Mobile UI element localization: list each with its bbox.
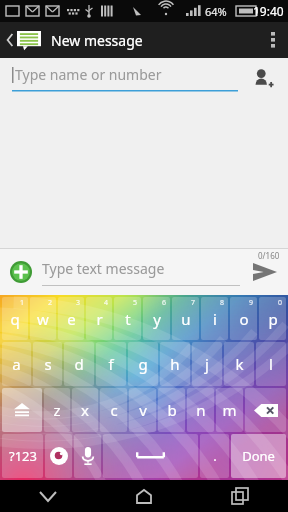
staticText: z: [53, 400, 61, 420]
staticText: n: [196, 400, 206, 420]
staticText: 8: [220, 298, 225, 308]
button[interactable]: j: [192, 342, 222, 386]
button[interactable]: g: [128, 342, 158, 386]
staticText: e: [67, 309, 76, 329]
button[interactable]: i: [201, 297, 228, 340]
button[interactable]: h: [160, 342, 190, 386]
button[interactable]: t: [114, 297, 141, 340]
button[interactable]: Back: [2, 26, 45, 54]
staticText: j: [205, 354, 209, 374]
staticText: 5: [133, 298, 138, 308]
button[interactable]: Done: [231, 434, 286, 478]
button[interactable]: ?123: [2, 434, 43, 478]
button[interactable]: Send: [246, 253, 284, 291]
button[interactable]: x: [72, 388, 98, 432]
button[interactable]: e: [58, 297, 84, 340]
staticText: o: [239, 309, 249, 329]
staticText: ?123: [9, 447, 37, 465]
button[interactable]: q: [2, 297, 28, 340]
staticText: y: [153, 309, 161, 329]
button[interactable]: z: [44, 388, 70, 432]
button[interactable]: Emoji: [45, 434, 72, 478]
staticText: b: [167, 400, 177, 420]
staticText: r: [96, 309, 103, 329]
button[interactable]: Recent apps: [192, 480, 288, 512]
button[interactable]: s: [33, 342, 62, 386]
staticText: 0/160: [258, 250, 280, 261]
button[interactable]: f: [96, 342, 126, 386]
staticText: i: [213, 309, 217, 329]
staticText: 9: [249, 298, 254, 308]
button[interactable]: b: [158, 388, 185, 432]
button[interactable]: Backspace: [245, 388, 286, 432]
staticText: l: [269, 354, 273, 374]
button[interactable]: a: [2, 342, 31, 386]
staticText: x: [81, 400, 89, 420]
button[interactable]: u: [172, 297, 199, 340]
staticText: a: [12, 354, 21, 374]
staticText: 3: [76, 298, 81, 308]
button[interactable]: m: [216, 388, 243, 432]
button[interactable]: Type name or number: [12, 65, 238, 92]
staticText: Done: [242, 447, 275, 465]
button[interactable]: o: [230, 297, 257, 340]
staticText: 64%: [205, 4, 227, 19]
button[interactable]: l: [256, 342, 286, 386]
staticText: g: [138, 354, 148, 374]
staticText: p: [268, 309, 278, 329]
button[interactable]: w: [30, 297, 56, 340]
button[interactable]: n: [187, 388, 214, 432]
staticText: 0: [278, 298, 283, 308]
staticText: t: [125, 309, 131, 329]
button[interactable]: c: [100, 388, 127, 432]
staticText: 19:40: [253, 3, 284, 19]
button[interactable]: Type text message: [42, 259, 240, 286]
staticText: Type name or number: [15, 65, 162, 84]
staticText: m: [222, 400, 237, 420]
staticText: 1: [20, 298, 25, 308]
staticText: f: [108, 354, 114, 374]
button[interactable]: .: [200, 434, 229, 478]
button[interactable]: k: [224, 342, 254, 386]
staticText: .: [213, 447, 217, 465]
staticText: New message: [51, 31, 143, 50]
button[interactable]: Add contact: [246, 61, 280, 95]
staticText: d: [74, 354, 84, 374]
button[interactable]: Home: [96, 480, 192, 512]
button[interactable]: r: [86, 297, 112, 340]
staticText: c: [110, 400, 118, 420]
staticText: 4: [104, 298, 109, 308]
button[interactable]: p: [259, 297, 286, 340]
button[interactable]: Shift: [2, 388, 42, 432]
button[interactable]: More options: [258, 22, 288, 58]
staticText: s: [44, 354, 52, 374]
staticText: 2: [48, 298, 53, 308]
button[interactable]: y: [143, 297, 170, 340]
staticText: q: [10, 309, 20, 329]
staticText: u: [181, 309, 191, 329]
staticText: h: [170, 354, 180, 374]
staticText: Type text message: [42, 259, 165, 278]
button[interactable]: v: [129, 388, 156, 432]
button[interactable]: d: [64, 342, 94, 386]
staticText: v: [139, 400, 147, 420]
button[interactable]: Voice input: [74, 434, 101, 478]
staticText: 6: [162, 298, 167, 308]
button[interactable]: Hide keyboard: [0, 480, 96, 512]
button[interactable]: Add attachment: [6, 257, 36, 287]
staticText: w: [37, 309, 49, 329]
staticText: 7: [191, 298, 196, 308]
button[interactable]: Space: [103, 434, 198, 478]
staticText: k: [235, 354, 244, 374]
